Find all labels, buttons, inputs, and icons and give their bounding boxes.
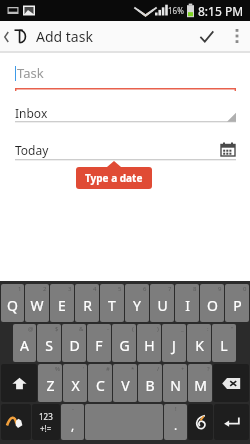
button[interactable]: Voice input [188, 404, 213, 440]
staticText: H [144, 336, 155, 355]
button[interactable]: $ [37, 324, 61, 362]
staticText: Z [46, 376, 55, 395]
button[interactable]: Save task [188, 21, 224, 51]
staticText: , [71, 417, 75, 433]
staticText: S [45, 336, 53, 355]
button[interactable]: _ [162, 324, 186, 362]
button[interactable]: ( [112, 324, 136, 362]
staticText: - [72, 405, 74, 413]
button[interactable]: - [87, 324, 111, 362]
button[interactable]: + [163, 364, 187, 402]
button[interactable]: Pick a date [220, 142, 236, 158]
button[interactable]: 1 [1, 284, 24, 322]
button[interactable]: % [38, 364, 62, 402]
button[interactable]: Type a date [76, 167, 152, 189]
staticText: ) [157, 325, 159, 333]
button[interactable]: Task [15, 64, 236, 91]
button[interactable]: Swipe input [1, 404, 31, 440]
staticText: / [157, 365, 160, 373]
button[interactable]: 123 [32, 404, 60, 440]
staticText: ! [175, 405, 177, 413]
staticText: C [96, 376, 105, 395]
staticText: E [58, 296, 66, 315]
button[interactable]: ! [164, 404, 187, 440]
button[interactable]: Backspace [213, 364, 249, 402]
staticText: A [20, 336, 29, 355]
staticText: 7 [168, 285, 172, 293]
button[interactable]: : [187, 324, 211, 362]
staticText: G [119, 336, 130, 355]
staticText: V [121, 376, 130, 395]
staticText: 5 [118, 285, 122, 293]
button[interactable]: More options [224, 21, 250, 51]
button[interactable]: 2 [25, 284, 49, 322]
staticText: Add task [36, 27, 93, 46]
staticText: : [207, 325, 209, 333]
button[interactable]: 4 [75, 284, 99, 322]
staticText: Today [15, 142, 49, 158]
button[interactable]: Shift [1, 364, 37, 402]
staticText: Y [133, 296, 141, 315]
staticText: # [106, 365, 110, 373]
staticText: J [172, 336, 176, 355]
staticText: F [95, 336, 103, 355]
staticText: R [83, 296, 92, 315]
staticText: +!= [40, 423, 52, 434]
staticText: Task [17, 64, 44, 82]
staticText: B [145, 376, 155, 395]
button[interactable]: ? [188, 364, 212, 402]
button[interactable]: @ [13, 324, 36, 362]
button[interactable]: 0 [225, 284, 249, 322]
staticText: Inbox [15, 105, 48, 121]
staticText: " [231, 325, 234, 333]
button[interactable]: 3 [50, 284, 74, 322]
staticText: * [131, 365, 135, 373]
staticText: % [55, 365, 60, 373]
staticText: N [170, 376, 181, 395]
staticText: $ [55, 325, 59, 333]
staticText: O [207, 296, 218, 315]
button[interactable]: Inbox [15, 104, 236, 130]
button[interactable]: 7 [150, 284, 174, 322]
staticText: ? [207, 365, 210, 373]
staticText: L [220, 336, 228, 355]
button[interactable]: * [113, 364, 137, 402]
staticText: Type a date [85, 171, 143, 185]
staticText: U [157, 296, 168, 315]
button[interactable]: Today [15, 140, 236, 161]
staticText: - [107, 325, 109, 333]
staticText: 8 [193, 285, 197, 293]
button[interactable]: ' [63, 364, 87, 402]
staticText: D [69, 336, 80, 355]
staticText: Q [7, 296, 18, 315]
staticText: T [108, 296, 116, 315]
button[interactable]: Navigate up [0, 29, 32, 44]
staticText: W [30, 296, 44, 315]
staticText: 6 [143, 285, 147, 293]
staticText: 1 [18, 285, 22, 293]
button[interactable]: & [62, 324, 86, 362]
button[interactable]: 9 [200, 284, 224, 322]
staticText: 0 [243, 285, 247, 293]
staticText: 9 [218, 285, 222, 293]
staticText: M [194, 376, 207, 395]
staticText: I [185, 296, 190, 315]
button[interactable]: - [61, 404, 84, 440]
staticText: X [71, 376, 80, 395]
staticText: P [233, 296, 242, 315]
staticText: & [79, 325, 84, 333]
staticText: 8:15 PM [198, 3, 244, 19]
button[interactable]: 8 [175, 284, 199, 322]
button[interactable]: / [138, 364, 162, 402]
button[interactable]: " [212, 324, 236, 362]
staticText: K [195, 336, 204, 355]
button[interactable]: ) [137, 324, 161, 362]
staticText: + [181, 365, 185, 373]
button[interactable]: Enter [214, 404, 249, 440]
staticText: 2 [43, 285, 47, 293]
button[interactable]: # [88, 364, 112, 402]
staticText: . [174, 417, 178, 433]
button[interactable]: 6 [125, 284, 149, 322]
button[interactable]: 5 [100, 284, 124, 322]
